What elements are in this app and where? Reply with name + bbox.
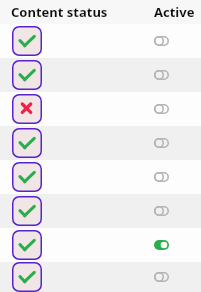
button[interactable]: Status rejected (12, 94, 42, 124)
button[interactable]: Status approved (12, 162, 42, 192)
button[interactable]: Status rejected (0, 92, 201, 126)
button[interactable]: Status approved (0, 58, 201, 92)
button[interactable]: Status approved (0, 262, 201, 292)
button[interactable]: Active, off (154, 172, 169, 182)
button[interactable]: Status approved (12, 60, 42, 90)
button[interactable]: Status approved (0, 194, 201, 228)
button[interactable]: Active, on (154, 240, 169, 250)
button[interactable]: Status approved (12, 230, 42, 260)
staticText: Content status (11, 3, 108, 21)
button[interactable]: Status approved (0, 160, 201, 194)
button[interactable]: Active, off (154, 272, 169, 282)
button[interactable]: Status approved (0, 228, 201, 262)
button[interactable]: Active, off (154, 70, 169, 80)
button[interactable]: Active, off (154, 206, 169, 216)
button[interactable]: Status approved (12, 26, 42, 56)
button[interactable]: Status approved (12, 128, 42, 158)
button[interactable]: Active, off (154, 36, 169, 46)
button[interactable]: Status approved (0, 24, 201, 58)
button[interactable]: Active, off (154, 138, 169, 148)
button[interactable]: Status approved (0, 126, 201, 160)
button[interactable]: Active, off (154, 104, 169, 114)
button[interactable]: Status approved (12, 196, 42, 226)
staticText: Active (154, 3, 195, 21)
button[interactable]: Status approved (12, 262, 42, 292)
